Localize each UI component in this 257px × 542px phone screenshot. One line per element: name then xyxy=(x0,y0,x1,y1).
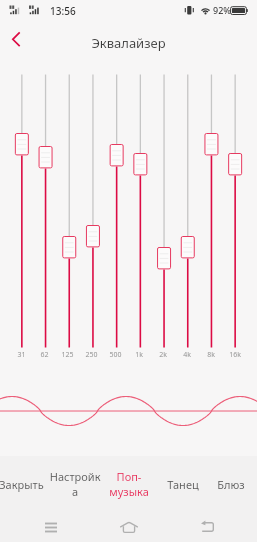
staticText: 92% xyxy=(213,4,231,16)
staticText: 16k xyxy=(229,350,241,360)
staticText: Эквалайзер xyxy=(0,34,257,52)
staticText: 1k xyxy=(135,350,143,360)
staticText: Поп-музыка xyxy=(102,469,156,499)
staticText: 125 xyxy=(61,350,74,360)
button[interactable]: Recent apps xyxy=(11,512,90,542)
staticText: Закрыть xyxy=(0,477,44,492)
staticText: Блюз xyxy=(217,477,245,492)
button[interactable]: Танец xyxy=(156,456,210,512)
staticText: Танец xyxy=(167,477,199,492)
staticText: 250 xyxy=(85,350,98,360)
button[interactable]: Back xyxy=(2,24,33,55)
staticText: 2k xyxy=(159,350,167,360)
staticText: 31 xyxy=(17,350,26,360)
staticText: 500 xyxy=(109,350,122,360)
button[interactable]: Блюз xyxy=(210,456,251,512)
staticText: 13:56 xyxy=(50,4,76,18)
button[interactable]: Закрыть xyxy=(0,456,48,512)
staticText: Настройка xyxy=(48,469,102,499)
staticText: 8k xyxy=(207,350,215,360)
staticText: 4k xyxy=(183,350,191,360)
button[interactable]: Поп-музыка xyxy=(102,456,156,512)
button[interactable]: Back xyxy=(168,512,246,542)
button[interactable]: Home xyxy=(90,512,168,542)
staticText: 62 xyxy=(40,350,49,360)
button[interactable]: Настройка xyxy=(48,456,102,512)
